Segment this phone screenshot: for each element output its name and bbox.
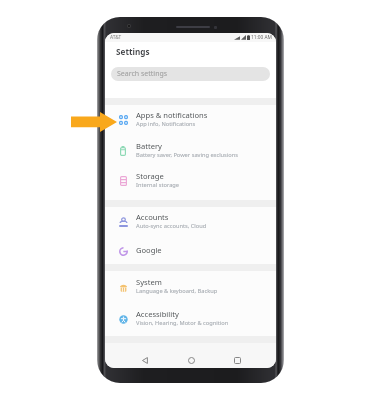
staticText: 11:00 AM xyxy=(251,34,272,41)
staticText: Apps & notifications xyxy=(136,110,208,120)
button[interactable]: Accounts xyxy=(105,207,276,237)
button[interactable]: Recent apps xyxy=(228,351,246,368)
button[interactable]: Back xyxy=(136,351,154,368)
staticText: Battery saver, Power saving exclusions xyxy=(136,151,238,159)
staticText: Storage xyxy=(136,171,164,181)
staticText: Internal storage xyxy=(136,181,180,189)
button[interactable]: Google xyxy=(105,237,276,264)
button[interactable]: System xyxy=(105,271,276,303)
button[interactable]: Search settings xyxy=(111,67,270,81)
staticText: Search settings xyxy=(117,69,168,79)
staticText: App info, Notifications xyxy=(136,120,196,128)
button[interactable]: Storage xyxy=(105,166,276,196)
staticText: AT&T xyxy=(110,34,122,41)
button[interactable]: Battery xyxy=(105,135,276,166)
button[interactable]: Home xyxy=(182,351,200,368)
staticText: Auto-sync accounts, Cloud xyxy=(136,222,207,230)
staticText: Google xyxy=(136,245,162,255)
button[interactable]: Apps & notifications xyxy=(105,105,276,135)
staticText: Battery xyxy=(136,141,162,151)
staticText: System xyxy=(136,277,162,287)
staticText: Vision, Hearing, Motor & cognition xyxy=(136,319,229,327)
staticText: Accessibility xyxy=(136,309,179,319)
staticText: Accounts xyxy=(136,212,169,222)
staticText: Language & keyboard, Backup xyxy=(136,287,218,295)
button[interactable]: Accessibility xyxy=(105,303,276,334)
staticText: Settings xyxy=(116,46,150,57)
